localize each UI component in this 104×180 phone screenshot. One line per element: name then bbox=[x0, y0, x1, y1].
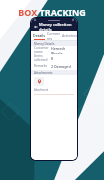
staticText: Money collection details bbox=[39, 22, 77, 31]
staticText: Details bbox=[33, 33, 46, 38]
button[interactable]: Details bbox=[31, 31, 47, 40]
staticText: Remarks bbox=[34, 64, 51, 68]
button[interactable]: Comments bbox=[47, 31, 62, 40]
staticText: BOX TRACKING bbox=[18, 6, 86, 18]
button[interactable]: Activities bbox=[62, 31, 77, 40]
staticText: Attachments bbox=[34, 71, 53, 75]
staticText: Hemesh Bhosle bbox=[51, 46, 74, 54]
staticText: 8 bbox=[51, 56, 74, 61]
button[interactable]: Attachment photo bbox=[34, 77, 44, 86]
button[interactable]: Back bbox=[33, 24, 39, 30]
staticText: 2 Damaged bbox=[51, 64, 74, 69]
staticText: Items collected bbox=[34, 54, 51, 62]
staticText: Attachment bbox=[34, 88, 49, 92]
staticText: Money Details bbox=[34, 42, 55, 46]
staticText: Customer name bbox=[34, 46, 51, 54]
staticText: Comments bbox=[47, 31, 62, 40]
staticText: Activities bbox=[62, 33, 77, 38]
